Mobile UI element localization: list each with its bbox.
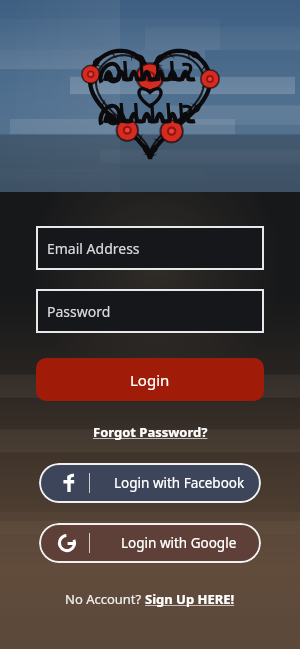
staticText: Password bbox=[47, 302, 111, 321]
button[interactable]: Forgot Password? bbox=[85, 420, 216, 444]
button[interactable]: Password bbox=[36, 289, 264, 333]
staticText: Login bbox=[130, 370, 170, 390]
button[interactable]: Login with Facebook bbox=[39, 463, 261, 503]
staticText: Sign Up HERE! bbox=[145, 590, 235, 608]
staticText: Login with Facebook bbox=[114, 474, 245, 492]
staticText: Email Address bbox=[47, 239, 140, 258]
button[interactable]: Login bbox=[36, 358, 264, 401]
button[interactable]: Email Address bbox=[36, 226, 264, 270]
button[interactable]: Login with Google bbox=[39, 523, 261, 563]
staticText: No Account? bbox=[65, 590, 145, 608]
staticText: Forgot Password? bbox=[93, 423, 208, 441]
button[interactable]: No Account? bbox=[57, 587, 243, 611]
staticText: Login with Google bbox=[121, 534, 237, 552]
